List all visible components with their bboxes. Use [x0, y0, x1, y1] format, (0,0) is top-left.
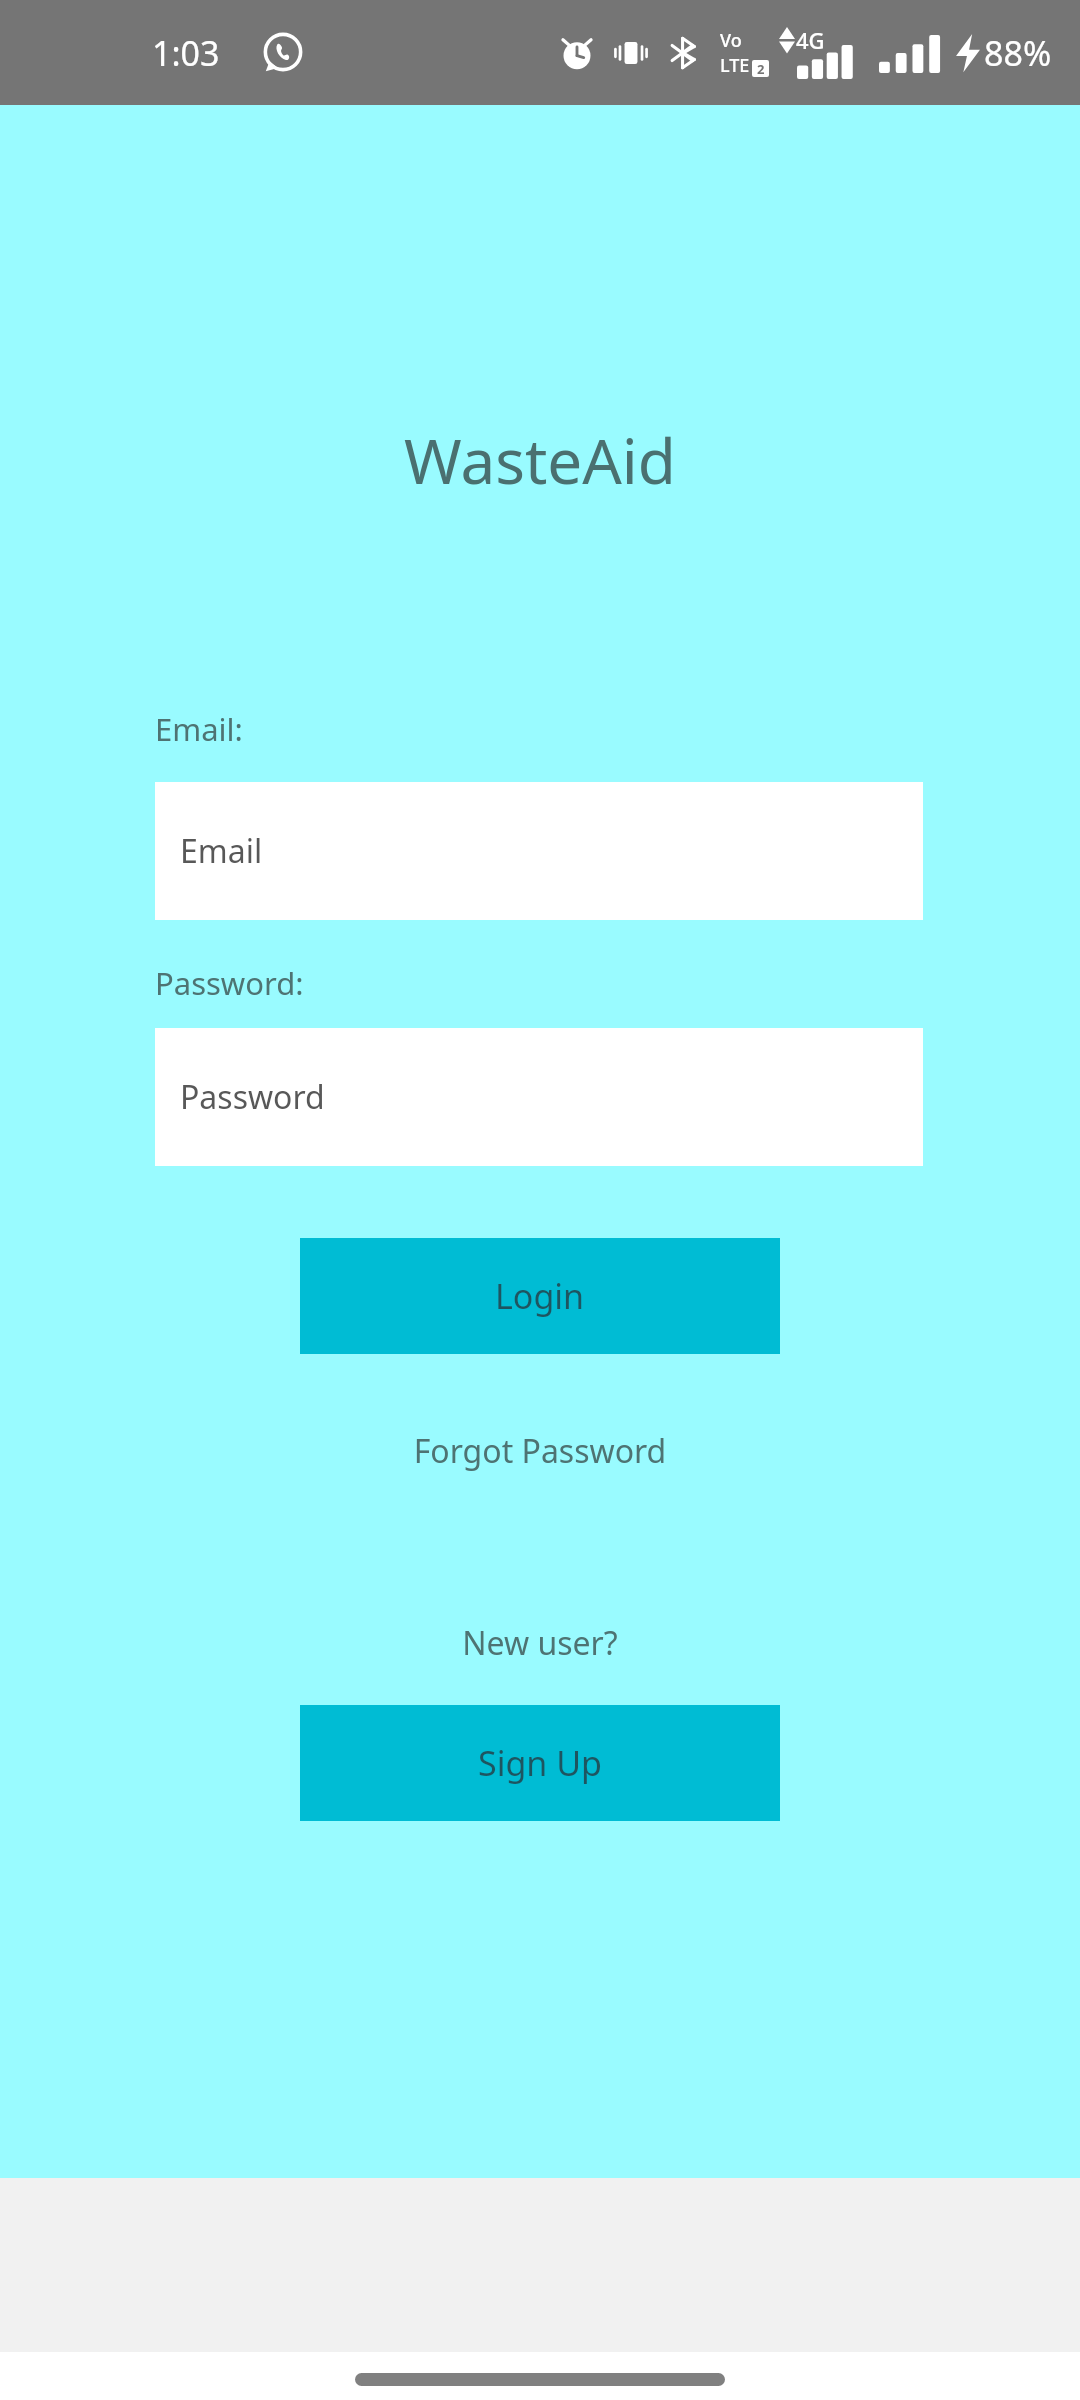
staticText: 88% — [984, 30, 1052, 76]
other: WhatsApp notification — [262, 31, 304, 73]
button[interactable]: Login — [300, 1238, 780, 1354]
staticText: New user? — [0, 1621, 1080, 1665]
staticText: Forgot Password — [0, 1429, 1080, 1473]
button[interactable]: Password — [155, 1028, 923, 1166]
staticText: Password — [180, 1075, 325, 1119]
staticText: Login — [495, 1273, 585, 1319]
button[interactable]: Forgot Password — [0, 1423, 1080, 1479]
staticText: 4G — [796, 25, 825, 55]
button[interactable]: Email — [155, 782, 923, 920]
staticText: 2 — [757, 60, 765, 77]
staticText: LTE — [720, 53, 750, 78]
staticText: Sign Up — [478, 1740, 602, 1786]
button[interactable]: Sign Up — [300, 1705, 780, 1821]
staticText: 1:03 — [152, 30, 220, 76]
staticText: WasteAid — [0, 418, 1080, 502]
staticText: Email: — [155, 708, 243, 750]
staticText: Email — [180, 829, 263, 873]
staticText: Vo — [720, 28, 742, 53]
staticText: Password: — [155, 962, 304, 1004]
